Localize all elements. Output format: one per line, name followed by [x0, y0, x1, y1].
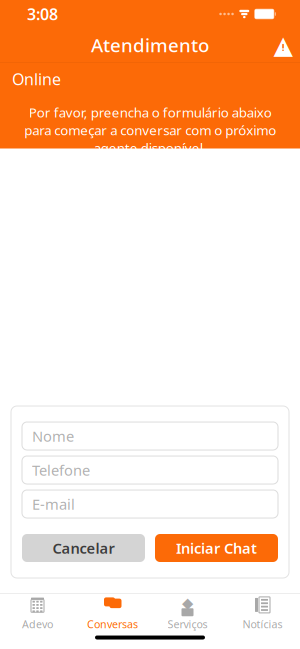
button[interactable]: Adevo: [0, 593, 75, 633]
staticText: Nome: [32, 426, 74, 446]
button[interactable]: Iniciar Chat: [155, 534, 278, 562]
staticText: Adevo: [22, 617, 53, 631]
staticText: Atendimento: [91, 33, 209, 57]
staticText: Conversas: [87, 617, 138, 631]
staticText: ◆: [182, 595, 193, 611]
button[interactable]: E-mail: [22, 490, 278, 518]
button[interactable]: Telefone: [22, 456, 278, 484]
staticText: Serviços: [167, 617, 207, 631]
staticText: Notícias: [242, 617, 282, 631]
button[interactable]: Notícias: [225, 593, 300, 633]
staticText: 3:08: [27, 3, 58, 25]
button[interactable]: Cancelar: [22, 534, 145, 562]
staticText: Cancelar: [52, 538, 114, 558]
button[interactable]: Nome: [22, 422, 278, 450]
button[interactable]: Alerta: [266, 28, 300, 62]
staticText: Telefone: [32, 460, 90, 480]
staticText: Iniciar Chat: [176, 538, 257, 558]
button[interactable]: ▼: [75, 593, 150, 633]
staticText: ▲: [273, 31, 292, 59]
staticText: E-mail: [32, 494, 75, 514]
button[interactable]: ◆: [150, 593, 225, 633]
staticText: Por favor, preencha o formulário abaixo …: [24, 104, 276, 157]
staticText: Online: [12, 68, 61, 89]
